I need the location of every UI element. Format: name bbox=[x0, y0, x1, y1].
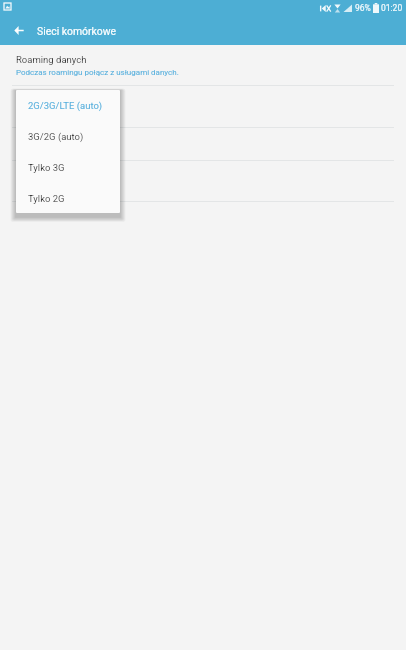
button[interactable] bbox=[0, 161, 406, 201]
button[interactable]: Roaming danych bbox=[0, 45, 406, 85]
button[interactable]: Tylko 3G bbox=[16, 152, 120, 183]
staticText: Tylko 3G bbox=[28, 162, 65, 173]
button[interactable]: Back bbox=[0, 16, 37, 45]
staticText: 3G/2G (auto) bbox=[28, 131, 84, 142]
staticText: Roaming danych bbox=[16, 54, 87, 65]
button[interactable]: Tylko 2G bbox=[16, 183, 120, 213]
staticText: 01:20 bbox=[381, 3, 403, 13]
button[interactable]: 3G/2G (auto) bbox=[16, 121, 120, 152]
button[interactable] bbox=[0, 128, 406, 160]
button[interactable] bbox=[0, 86, 406, 127]
button[interactable]: 2G/3G/LTE (auto) bbox=[16, 90, 120, 121]
staticText: Podczas roamingu połącz z usługami danyc… bbox=[16, 68, 179, 77]
staticText: 2G/3G/LTE (auto) bbox=[28, 100, 103, 111]
staticText: 96% bbox=[355, 3, 371, 13]
staticText: Sieci komórkowe bbox=[37, 25, 117, 37]
staticText: Tylko 2G bbox=[28, 193, 65, 204]
